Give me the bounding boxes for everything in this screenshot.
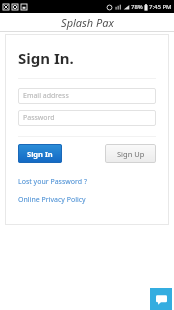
staticText: Lost your Password ? <box>18 177 87 187</box>
staticText: Password <box>23 113 55 123</box>
staticText: Online Privacy Policy <box>18 195 86 205</box>
button[interactable]: Open chat <box>150 288 172 310</box>
button[interactable]: Sign In <box>18 144 62 163</box>
staticText: 7:45 PM <box>149 3 172 11</box>
staticText: 78% <box>131 3 143 11</box>
staticText: Email address <box>23 91 69 101</box>
button[interactable]: Online Privacy Policy <box>18 195 86 205</box>
button[interactable]: Password <box>18 110 156 126</box>
staticText: Sign In. <box>18 48 74 68</box>
staticText: Splash Pax <box>61 15 114 30</box>
button[interactable]: Sign Up <box>105 144 156 163</box>
staticText: Sign In <box>27 149 53 159</box>
button[interactable]: Email address <box>18 88 156 104</box>
staticText: Sign Up <box>117 149 145 159</box>
button[interactable]: Lost your Password ? <box>18 177 87 187</box>
